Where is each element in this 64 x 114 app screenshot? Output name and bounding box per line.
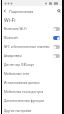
button[interactable]: Back [0, 6, 9, 16]
button[interactable]: NFC и бесконтактные платежи [0, 42, 64, 51]
button[interactable]: Авиарежим [0, 51, 64, 60]
staticText: Авиарежим [4, 54, 52, 58]
staticText: Bluetooth [4, 36, 52, 40]
button[interactable]: Использование данных [0, 78, 64, 87]
staticText: Использование данных [4, 81, 40, 85]
button[interactable]: Мобильная точка доступа [0, 87, 64, 96]
staticText: Мобильная точка доступа [4, 90, 44, 94]
button[interactable]: Диспетчер SIM-карт [0, 60, 64, 69]
button[interactable]: Мобильные сети [0, 69, 64, 78]
staticText: Дополнительные функции подключения [4, 99, 60, 103]
staticText: Wi-Fi [4, 17, 16, 24]
staticText: NFC и бесконтактные платежи [4, 45, 52, 49]
staticText: Другие настройки [4, 109, 32, 113]
staticText: Диспетчер SIM-карт [4, 63, 35, 67]
staticText: Мобильные сети [4, 72, 30, 76]
button[interactable]: Search [53, 6, 64, 16]
button[interactable]: Другие настройки [0, 108, 64, 114]
button[interactable]: Bluetooth [0, 33, 64, 42]
button[interactable]: Включить Wi-Fi [0, 24, 64, 33]
staticText: Включить Wi-Fi [4, 27, 52, 31]
button[interactable]: Дополнительные функции подключения [0, 96, 64, 105]
staticText: Подключения [9, 9, 34, 14]
